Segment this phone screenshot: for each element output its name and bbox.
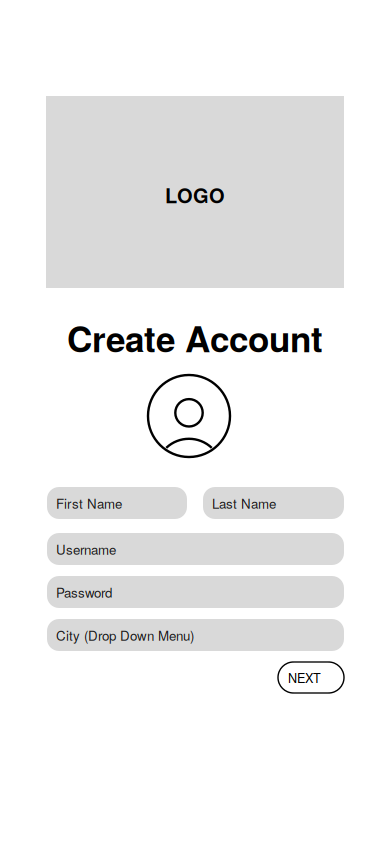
button[interactable]: Password bbox=[47, 576, 344, 608]
staticText: NEXT bbox=[288, 668, 321, 686]
button[interactable]: Last Name bbox=[203, 487, 344, 519]
button[interactable]: Add profile photo bbox=[148, 375, 230, 457]
staticText: Last Name bbox=[212, 493, 276, 513]
staticText: Username bbox=[56, 539, 116, 559]
button[interactable]: First Name bbox=[47, 487, 187, 519]
button[interactable]: City (Drop Down Menu) bbox=[47, 619, 344, 651]
button[interactable]: NEXT bbox=[278, 662, 344, 693]
staticText: City (Drop Down Menu) bbox=[56, 625, 194, 645]
staticText: Password bbox=[56, 582, 112, 602]
button[interactable]: Username bbox=[47, 533, 344, 565]
staticText: First Name bbox=[56, 493, 122, 513]
staticText: Create Account bbox=[67, 313, 323, 363]
staticText: LOGO bbox=[165, 181, 225, 209]
